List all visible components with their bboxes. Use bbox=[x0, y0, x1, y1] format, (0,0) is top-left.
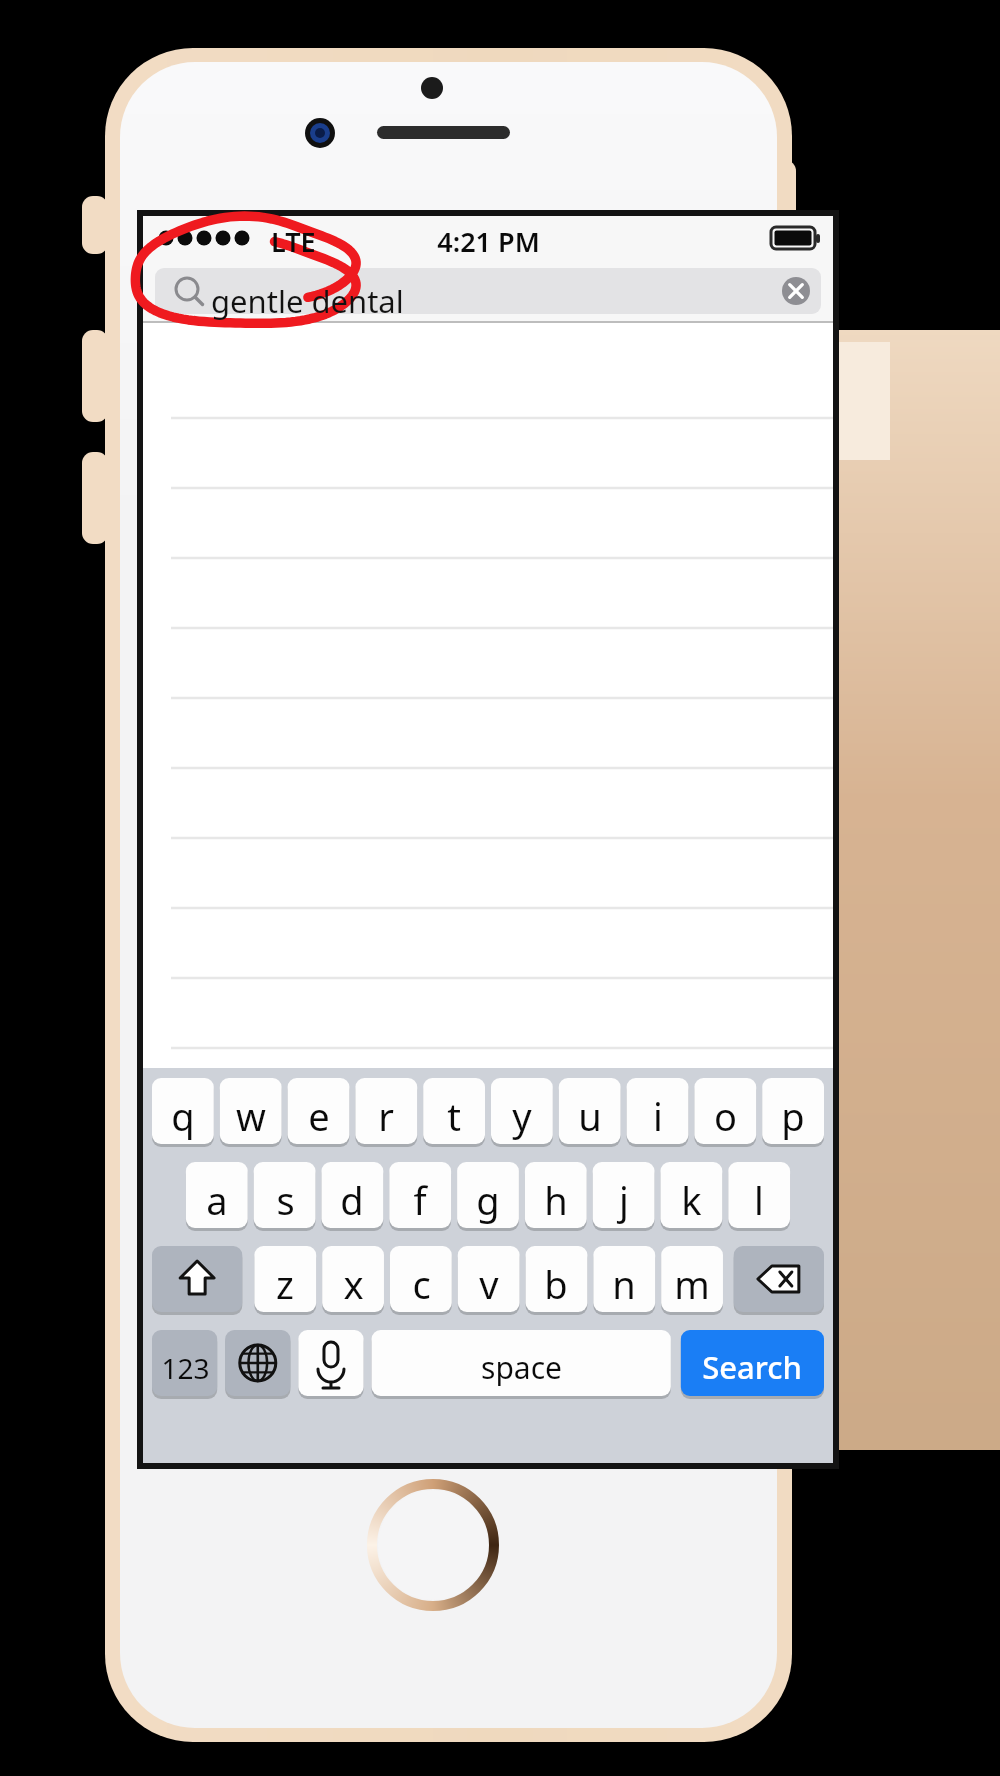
staticText: j bbox=[619, 1174, 629, 1226]
button[interactable]: Search field, gentle dental bbox=[155, 268, 821, 314]
staticText: x bbox=[343, 1258, 364, 1310]
staticText: l bbox=[754, 1174, 764, 1226]
button[interactable]: Key p bbox=[762, 1078, 824, 1144]
button[interactable]: Dictation bbox=[298, 1330, 363, 1396]
staticText: d bbox=[340, 1174, 364, 1226]
staticText: u bbox=[578, 1090, 602, 1142]
button[interactable]: Key h bbox=[525, 1162, 587, 1228]
button[interactable]: Key e bbox=[288, 1078, 350, 1144]
staticText: 123 bbox=[161, 1349, 210, 1387]
button[interactable]: Key s bbox=[254, 1162, 316, 1228]
staticText: y bbox=[512, 1090, 532, 1142]
staticText: space bbox=[481, 1347, 562, 1388]
staticText: q bbox=[171, 1090, 195, 1142]
button[interactable]: Key u bbox=[559, 1078, 621, 1144]
button[interactable]: Key v bbox=[458, 1246, 520, 1312]
button[interactable]: Key a bbox=[186, 1162, 248, 1228]
button[interactable]: Change keyboard bbox=[225, 1330, 290, 1396]
staticText: g bbox=[476, 1174, 500, 1226]
button[interactable]: Key f bbox=[389, 1162, 451, 1228]
staticText: f bbox=[413, 1174, 427, 1226]
staticText: p bbox=[781, 1090, 805, 1142]
button[interactable]: Key o bbox=[694, 1078, 756, 1144]
button[interactable]: Backspace bbox=[734, 1246, 824, 1312]
staticText: o bbox=[714, 1090, 737, 1142]
staticText: v bbox=[479, 1258, 499, 1310]
staticText: c bbox=[412, 1258, 431, 1310]
staticText: m bbox=[674, 1258, 710, 1310]
button[interactable]: Key i bbox=[627, 1078, 689, 1144]
staticText: i bbox=[653, 1090, 663, 1142]
button[interactable]: Key r bbox=[355, 1078, 417, 1144]
button[interactable]: Key x bbox=[322, 1246, 384, 1312]
button[interactable]: Key m bbox=[661, 1246, 723, 1312]
staticText: h bbox=[544, 1174, 568, 1226]
staticText: b bbox=[544, 1258, 568, 1310]
staticText: z bbox=[276, 1258, 294, 1310]
staticText: 4:21 PM bbox=[437, 223, 540, 260]
button[interactable]: Shift bbox=[152, 1246, 242, 1312]
staticText: LTE bbox=[271, 223, 316, 260]
button[interactable]: Numbers bbox=[152, 1330, 217, 1396]
button[interactable]: Key b bbox=[526, 1246, 588, 1312]
button[interactable]: Key d bbox=[322, 1162, 384, 1228]
button[interactable]: Key w bbox=[220, 1078, 282, 1144]
button[interactable]: Key y bbox=[491, 1078, 553, 1144]
staticText: t bbox=[447, 1090, 461, 1142]
staticText: s bbox=[276, 1174, 295, 1226]
button[interactable]: Home bbox=[371, 1483, 495, 1607]
staticText: Search bbox=[702, 1346, 802, 1388]
button[interactable]: Key q bbox=[152, 1078, 214, 1144]
staticText: a bbox=[206, 1174, 228, 1226]
button[interactable]: Key c bbox=[390, 1246, 452, 1312]
button[interactable]: Key z bbox=[254, 1246, 316, 1312]
button[interactable]: Key j bbox=[593, 1162, 655, 1228]
button[interactable]: Key l bbox=[728, 1162, 790, 1228]
button[interactable]: Key t bbox=[423, 1078, 485, 1144]
button[interactable]: Key g bbox=[457, 1162, 519, 1228]
button[interactable]: Key n bbox=[593, 1246, 655, 1312]
button[interactable]: Key k bbox=[661, 1162, 723, 1228]
button[interactable]: space bbox=[372, 1330, 671, 1396]
button[interactable]: Search bbox=[681, 1330, 824, 1396]
staticText: k bbox=[681, 1174, 702, 1226]
staticText: r bbox=[378, 1090, 394, 1142]
staticText: w bbox=[236, 1090, 266, 1142]
button[interactable]: Clear text bbox=[778, 276, 814, 310]
staticText: n bbox=[612, 1258, 636, 1310]
staticText: gentle dental bbox=[211, 280, 404, 322]
staticText: e bbox=[308, 1090, 330, 1142]
